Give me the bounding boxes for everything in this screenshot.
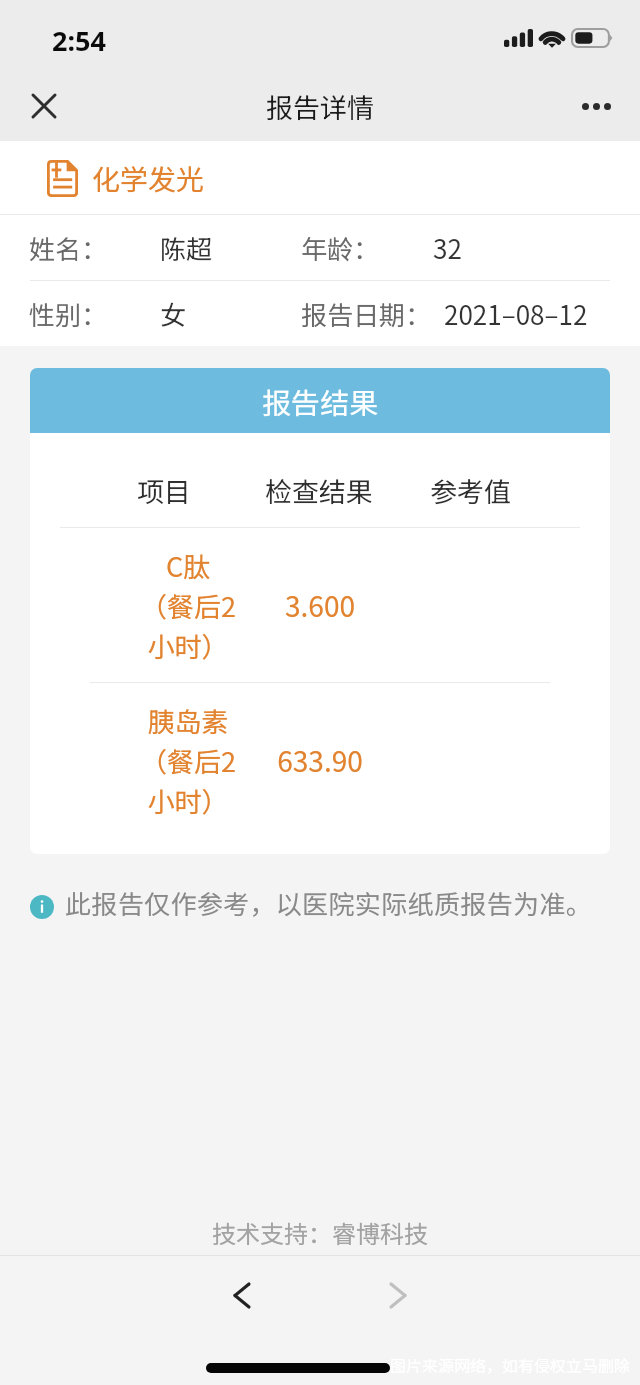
staticText: 2:54 <box>52 22 106 59</box>
staticText: 此报告仅作参考，以医院实际纸质报告为准。 <box>65 884 593 922</box>
staticText: 化学发光 <box>92 158 205 199</box>
staticText: 技术支持：睿博科技 <box>212 1215 428 1250</box>
staticText: 项目 <box>114 471 214 510</box>
staticText: 检查结果 <box>244 471 394 510</box>
button[interactable]: Back <box>202 1256 282 1334</box>
staticText: 报告详情 <box>266 87 374 126</box>
staticText: 3.600 <box>245 585 395 626</box>
staticText: 32 <box>433 229 462 267</box>
staticText: 633.90 <box>245 740 395 781</box>
staticText: 年龄： <box>301 229 380 267</box>
staticText: 胰岛素（餐后2小时） <box>140 701 236 820</box>
staticText: 报告结果 <box>262 380 379 422</box>
staticText: 女 <box>160 295 187 333</box>
button[interactable]: Close <box>12 74 76 138</box>
staticText: 姓名： <box>29 229 108 267</box>
staticText: 图片来源网络，如有侵权立马删除 <box>390 1353 631 1375</box>
staticText: 参考值 <box>408 471 533 510</box>
button[interactable]: Forward <box>358 1256 438 1334</box>
staticText: 陈超 <box>160 229 213 267</box>
staticText: 报告日期： <box>301 295 432 333</box>
staticText: C肽（餐后2小时） <box>140 546 236 665</box>
button[interactable]: More options <box>564 74 628 138</box>
staticText: 性别： <box>29 295 108 333</box>
staticText: 2021–08–12 <box>444 295 588 333</box>
